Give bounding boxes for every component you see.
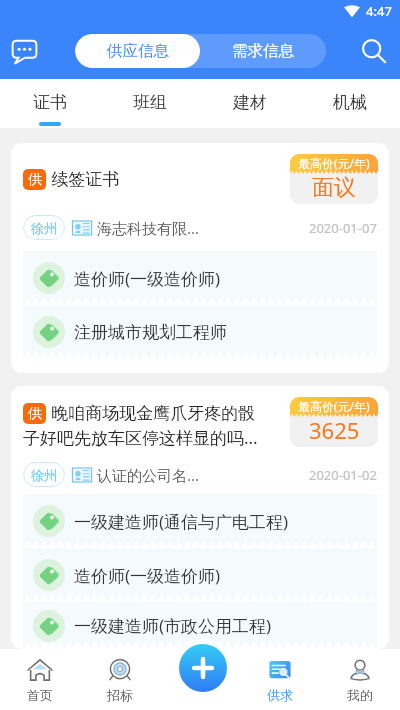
staticText: 证书 — [33, 92, 67, 113]
staticText: 最高价(元/年) — [298, 155, 370, 171]
staticText: 海志科技有限... — [97, 218, 200, 238]
button[interactable]: 造价师(一级造价师) — [23, 251, 377, 305]
staticText: 我的 — [347, 687, 373, 703]
button[interactable]: 注册城市规划工程师 — [23, 305, 377, 359]
staticText: 供求 — [267, 687, 293, 703]
button[interactable]: 证书 — [0, 79, 100, 128]
button[interactable]: 一级建造师(市政公用工程) — [23, 602, 377, 649]
button[interactable]: 机械 — [300, 79, 400, 128]
staticText: 一级建造师(市政公用工程) — [74, 614, 272, 637]
button[interactable]: Add — [179, 644, 227, 692]
button[interactable]: 供应信息 — [75, 34, 200, 68]
staticText: 供应信息 — [107, 41, 169, 61]
staticText: 徐州 — [31, 220, 57, 236]
staticText: 2020-01-07 — [309, 219, 377, 237]
staticText: 一级建造师(通信与广电工程) — [74, 510, 289, 533]
staticText: 建材 — [233, 92, 267, 113]
button[interactable]: 首页 — [0, 649, 80, 710]
button[interactable]: 造价师(一级造价师) — [23, 548, 377, 602]
staticText: 徐州 — [31, 467, 57, 483]
staticText: 招标 — [107, 687, 133, 703]
staticText: 机械 — [333, 92, 367, 113]
staticText: 续签证书 — [23, 167, 120, 190]
button[interactable]: 我的 — [320, 649, 400, 710]
button[interactable]: Search — [360, 37, 388, 65]
staticText: 需求信息 — [232, 41, 294, 61]
button[interactable]: 建材 — [200, 79, 300, 128]
staticText: 供 — [28, 171, 42, 189]
button[interactable]: 需求信息 — [200, 34, 326, 68]
staticText: 注册城市规划工程师 — [74, 322, 227, 343]
button[interactable]: 晚咱商场现金鹰爪牙疼的骰子好吧先放车区停这样显的吗... — [11, 386, 389, 649]
staticText: 造价师(一级造价师) — [74, 564, 221, 587]
button[interactable]: 一级建造师(通信与广电工程) — [23, 494, 377, 548]
button[interactable]: 续签证书 — [11, 143, 389, 373]
staticText: 4:47 — [366, 2, 392, 20]
staticText: 面议 — [312, 174, 356, 202]
staticText: 认证的公司名... — [97, 465, 200, 485]
staticText: 最高价(元/年) — [298, 398, 370, 414]
staticText: 晚咱商场现金鹰爪牙疼的骰子好吧先放车区停这样显的吗... — [23, 401, 267, 449]
staticText: 3625 — [309, 415, 360, 445]
staticText: 班组 — [133, 92, 167, 113]
button[interactable]: 供求 — [240, 649, 320, 710]
staticText: 2020-01-02 — [309, 466, 377, 484]
button[interactable]: Messages — [10, 37, 38, 65]
button[interactable]: 班组 — [100, 79, 200, 128]
button[interactable]: 招标 — [80, 649, 160, 710]
staticText: 造价师(一级造价师) — [74, 267, 221, 290]
staticText: 供 — [28, 405, 42, 423]
staticText: 首页 — [27, 687, 53, 703]
